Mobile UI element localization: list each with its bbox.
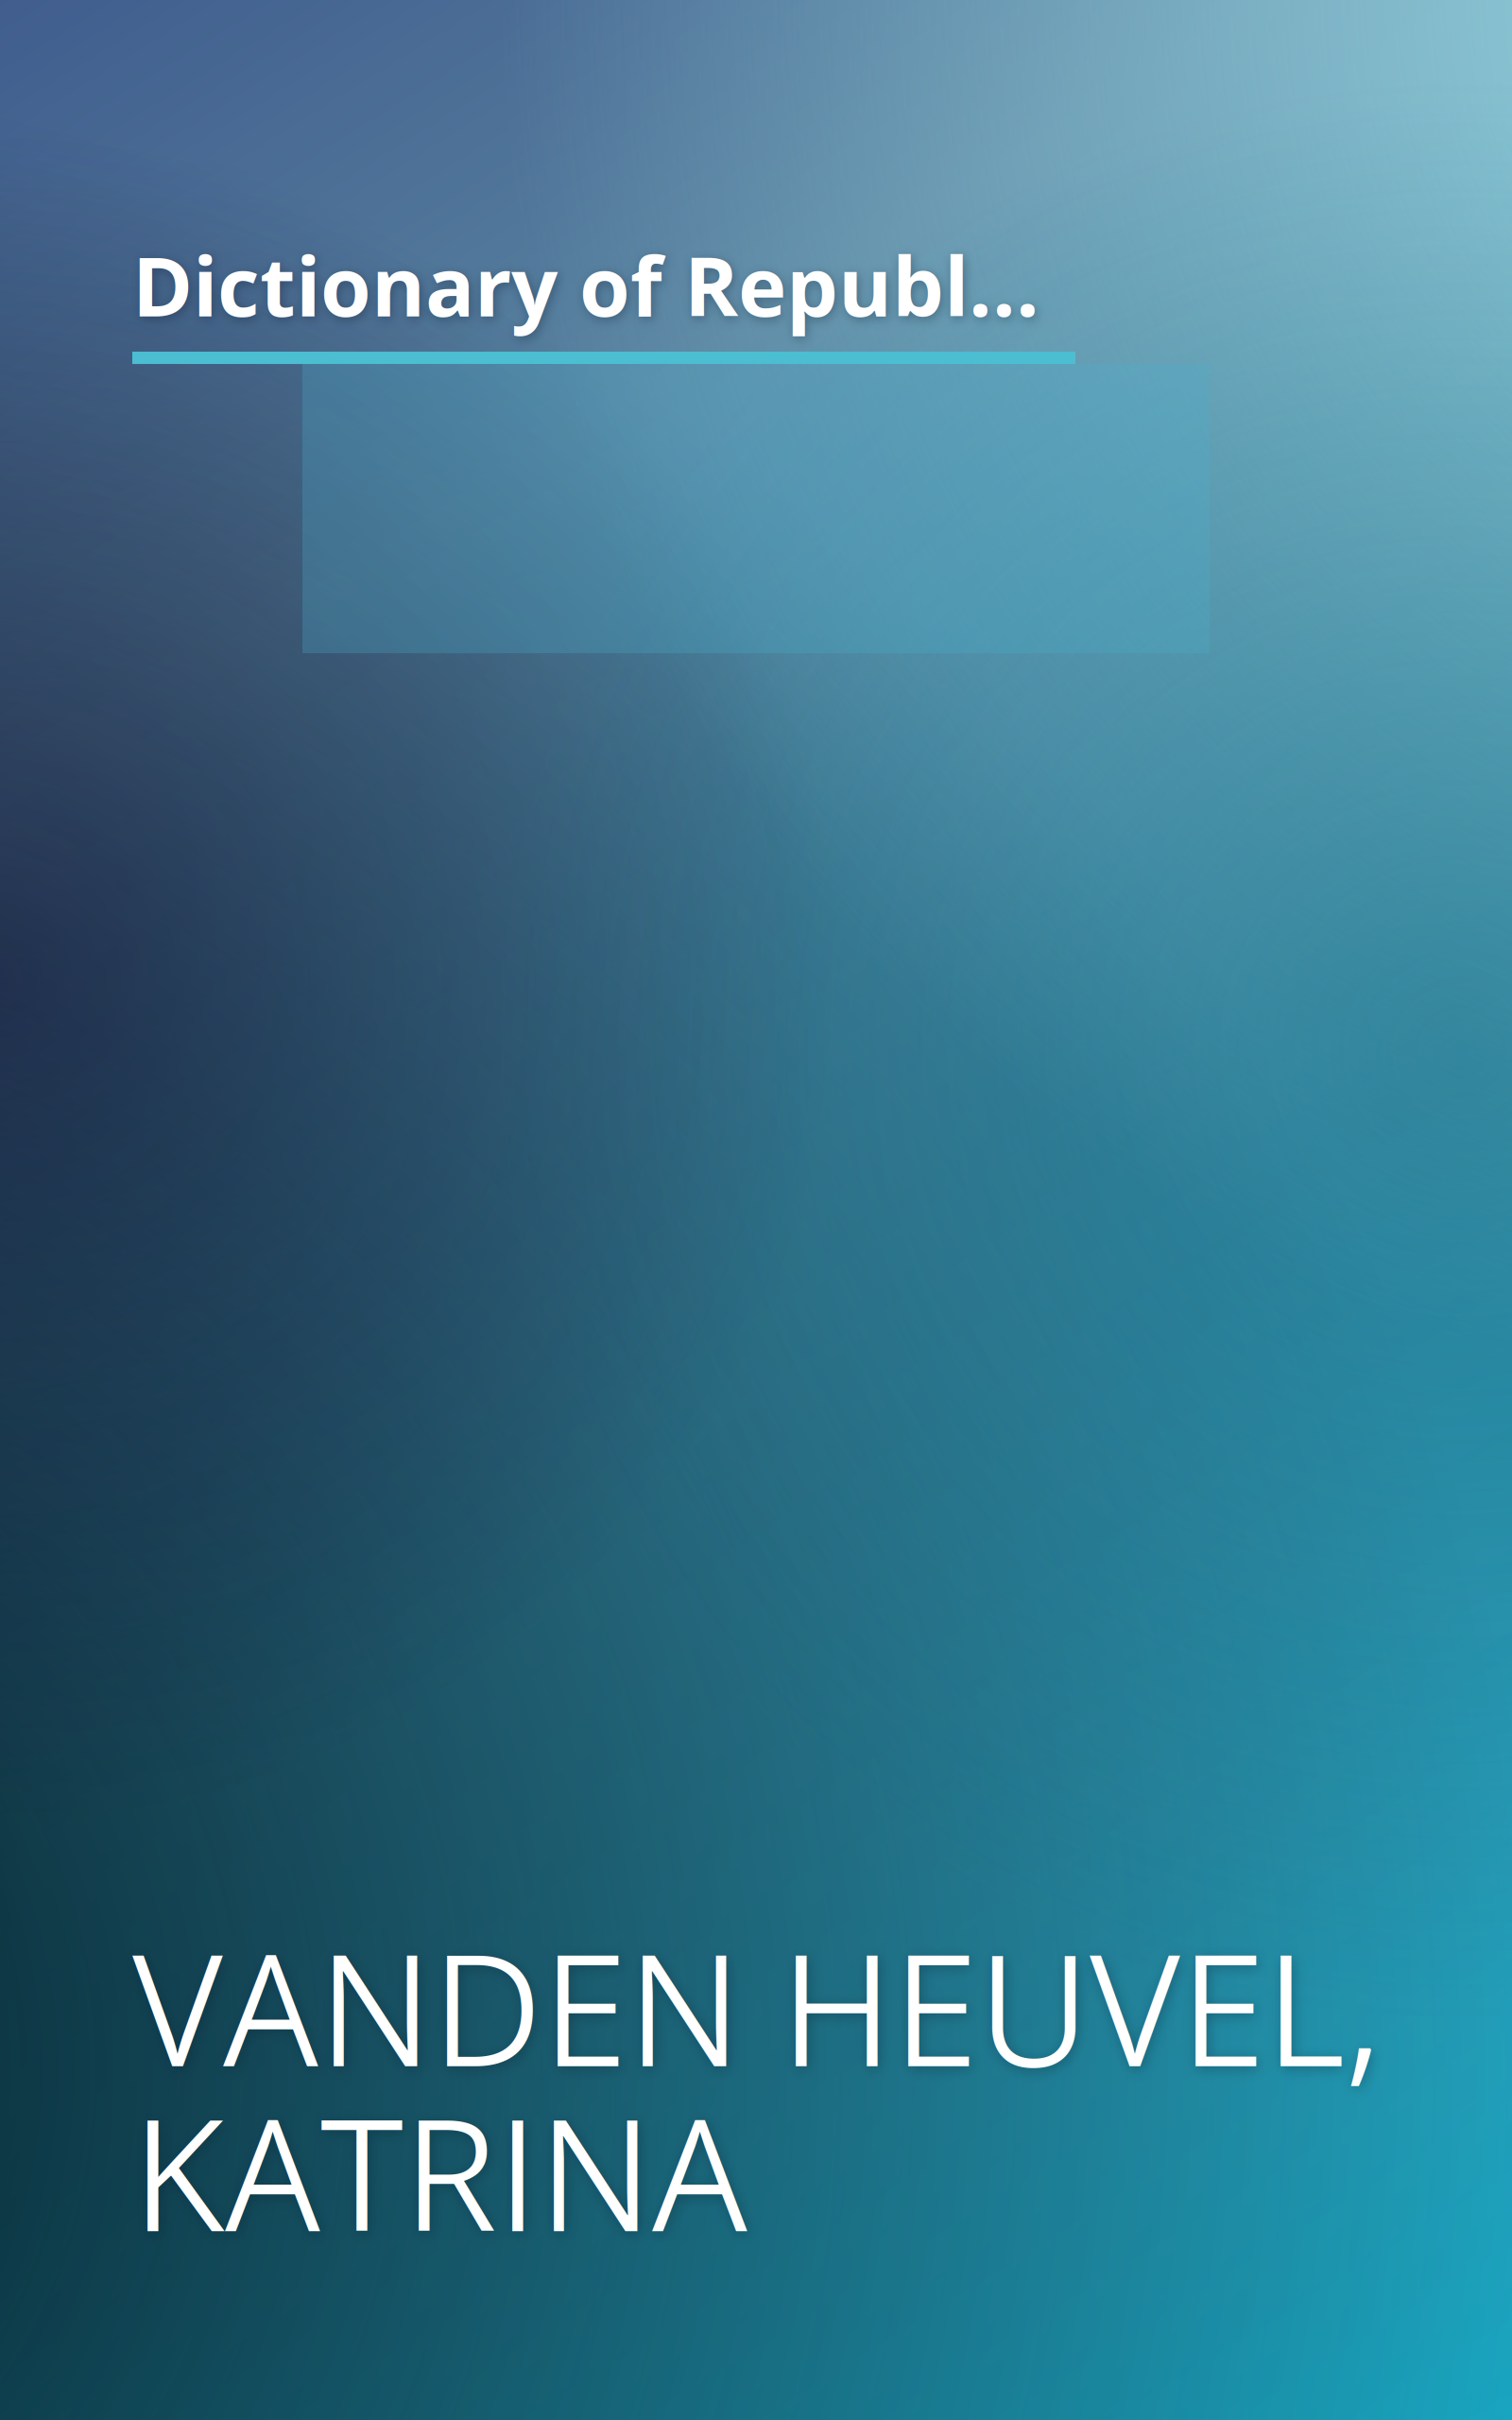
staticText: Dictionary of Republ... — [132, 229, 1039, 340]
staticText: KATRINA — [132, 2067, 747, 2276]
staticText: VANDEN HEUVEL, — [132, 1902, 1382, 2111]
button[interactable]: Dictionary of Republ... — [0, 0, 1512, 2420]
